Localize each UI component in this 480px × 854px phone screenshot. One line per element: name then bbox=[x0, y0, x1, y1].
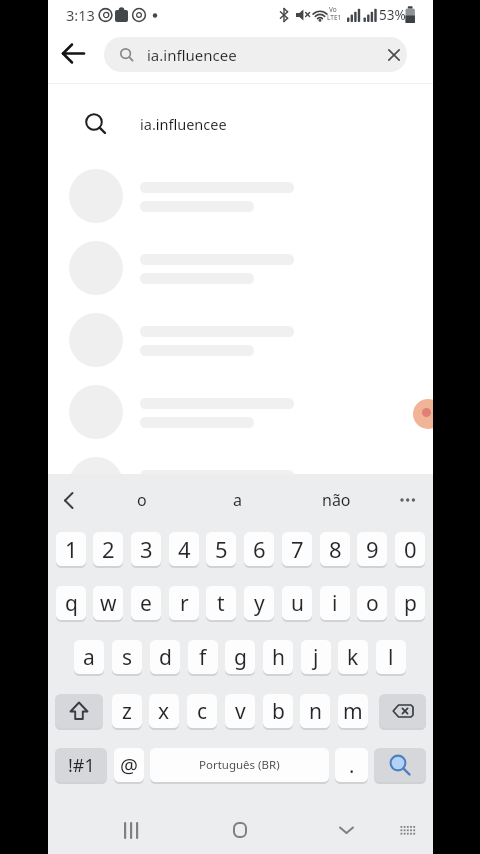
button[interactable]: s bbox=[112, 640, 142, 674]
button[interactable]: z bbox=[112, 694, 142, 728]
staticText: h bbox=[272, 643, 285, 672]
staticText: Português (BR) bbox=[199, 757, 280, 773]
button[interactable]: x bbox=[149, 694, 179, 728]
staticText: 5 bbox=[215, 534, 228, 564]
button[interactable]: y bbox=[244, 586, 274, 620]
staticText: r bbox=[180, 589, 189, 618]
button[interactable]: q bbox=[56, 586, 86, 620]
button[interactable] bbox=[57, 37, 90, 70]
button[interactable]: l bbox=[376, 640, 406, 674]
staticText: j bbox=[313, 643, 319, 672]
button[interactable]: b bbox=[263, 694, 293, 728]
staticText: e bbox=[140, 589, 152, 618]
button[interactable]: 6 bbox=[244, 532, 274, 566]
button[interactable]: ia.influencee bbox=[48, 96, 433, 152]
staticText: p bbox=[404, 589, 417, 618]
staticText: 3:13 bbox=[66, 5, 95, 25]
button[interactable]: h bbox=[263, 640, 293, 674]
staticText: . bbox=[349, 752, 355, 779]
staticText: 53% bbox=[379, 6, 406, 24]
staticText: ia.influencee bbox=[147, 45, 237, 65]
staticText: v bbox=[235, 697, 246, 726]
staticText: y bbox=[254, 589, 265, 618]
staticText: LTE1 bbox=[327, 13, 342, 22]
button[interactable]: n bbox=[300, 694, 330, 728]
button[interactable]: . bbox=[335, 748, 368, 782]
button[interactable]: f bbox=[188, 640, 218, 674]
button[interactable] bbox=[325, 808, 368, 852]
button[interactable]: c bbox=[187, 694, 217, 728]
button[interactable]: j bbox=[301, 640, 331, 674]
staticText: 7 bbox=[291, 534, 304, 564]
button[interactable] bbox=[379, 694, 426, 728]
staticText: i bbox=[332, 589, 338, 618]
button[interactable]: 5 bbox=[206, 532, 236, 566]
staticText: m bbox=[343, 697, 363, 726]
staticText: w bbox=[100, 589, 117, 618]
staticText: a bbox=[233, 489, 242, 511]
button[interactable]: w bbox=[93, 586, 123, 620]
button[interactable] bbox=[54, 482, 84, 518]
button[interactable]: v bbox=[225, 694, 255, 728]
staticText: u bbox=[291, 589, 304, 618]
staticText: !#1 bbox=[68, 753, 95, 778]
button[interactable]: Português (BR) bbox=[150, 748, 329, 782]
button[interactable]: g bbox=[225, 640, 255, 674]
staticText: não bbox=[322, 489, 351, 511]
button[interactable]: u bbox=[282, 586, 312, 620]
staticText: n bbox=[309, 697, 322, 726]
staticText: s bbox=[122, 643, 133, 672]
button[interactable]: !#1 bbox=[55, 748, 107, 782]
button[interactable]: o bbox=[121, 482, 162, 518]
button[interactable]: t bbox=[206, 586, 236, 620]
staticText: q bbox=[65, 589, 78, 618]
staticText: Vo bbox=[329, 5, 337, 14]
button[interactable] bbox=[392, 482, 424, 518]
staticText: a bbox=[83, 643, 95, 672]
button[interactable] bbox=[374, 748, 426, 782]
staticText: o bbox=[137, 489, 147, 511]
staticText: 3 bbox=[140, 534, 153, 564]
button[interactable]: 1 bbox=[56, 532, 86, 566]
staticText: f bbox=[199, 643, 207, 672]
button[interactable] bbox=[111, 808, 151, 852]
staticText: 0 bbox=[404, 534, 417, 564]
button[interactable]: 0 bbox=[395, 532, 425, 566]
staticText: b bbox=[272, 697, 285, 726]
button[interactable]: r bbox=[169, 586, 199, 620]
staticText: o bbox=[366, 589, 379, 618]
staticText: t bbox=[217, 589, 225, 618]
button[interactable]: a bbox=[74, 640, 104, 674]
staticText: 4 bbox=[178, 534, 191, 564]
staticText: d bbox=[159, 643, 172, 672]
staticText: 8 bbox=[329, 534, 342, 564]
staticText: 2 bbox=[102, 534, 115, 564]
button[interactable]: 4 bbox=[169, 532, 199, 566]
staticText: 6 bbox=[253, 534, 266, 564]
staticText: 9 bbox=[366, 534, 379, 564]
button[interactable]: e bbox=[131, 586, 161, 620]
button[interactable] bbox=[55, 694, 103, 728]
button[interactable]: o bbox=[357, 586, 387, 620]
button[interactable]: p bbox=[395, 586, 425, 620]
button[interactable] bbox=[390, 808, 426, 852]
button[interactable]: 2 bbox=[93, 532, 123, 566]
button[interactable]: 9 bbox=[357, 532, 387, 566]
button[interactable]: @ bbox=[114, 748, 144, 782]
button[interactable] bbox=[382, 43, 406, 67]
button[interactable]: a bbox=[217, 482, 258, 518]
staticText: c bbox=[197, 697, 208, 726]
button[interactable]: não bbox=[310, 482, 362, 518]
staticText: ia.influencee bbox=[140, 114, 227, 134]
button[interactable] bbox=[218, 808, 262, 852]
button[interactable]: d bbox=[150, 640, 180, 674]
button[interactable]: k bbox=[338, 640, 368, 674]
staticText: k bbox=[347, 643, 359, 672]
button[interactable]: i bbox=[320, 586, 350, 620]
button[interactable]: 3 bbox=[131, 532, 161, 566]
button[interactable]: m bbox=[338, 694, 368, 728]
button[interactable]: 8 bbox=[320, 532, 350, 566]
button[interactable]: 7 bbox=[282, 532, 312, 566]
staticText: g bbox=[234, 643, 247, 672]
button[interactable]: ia.influencee bbox=[104, 37, 407, 72]
